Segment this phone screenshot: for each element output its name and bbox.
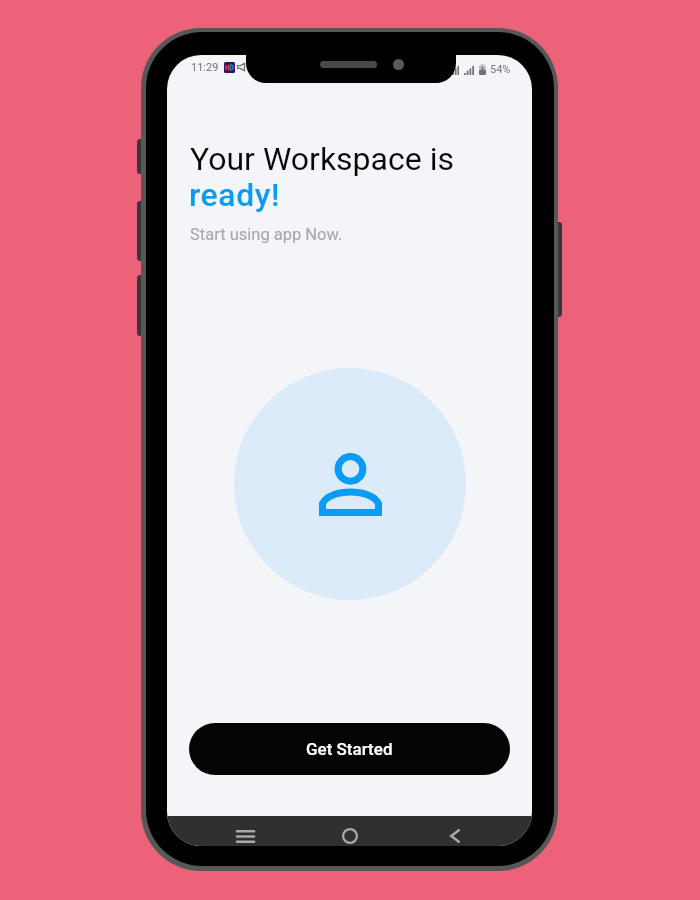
staticText: Get Started [306, 739, 393, 759]
staticText: ready! [189, 176, 281, 214]
button[interactable]: Get Started [189, 723, 510, 775]
staticText: Your Workspace is [190, 140, 454, 178]
button[interactable]: Back [429, 816, 481, 846]
staticText: 54% [490, 63, 511, 76]
button[interactable]: Recent apps [219, 816, 271, 846]
staticText: Start using app Now. [190, 225, 343, 244]
staticText: 11:29 [191, 61, 219, 74]
button[interactable]: Home [324, 816, 376, 846]
